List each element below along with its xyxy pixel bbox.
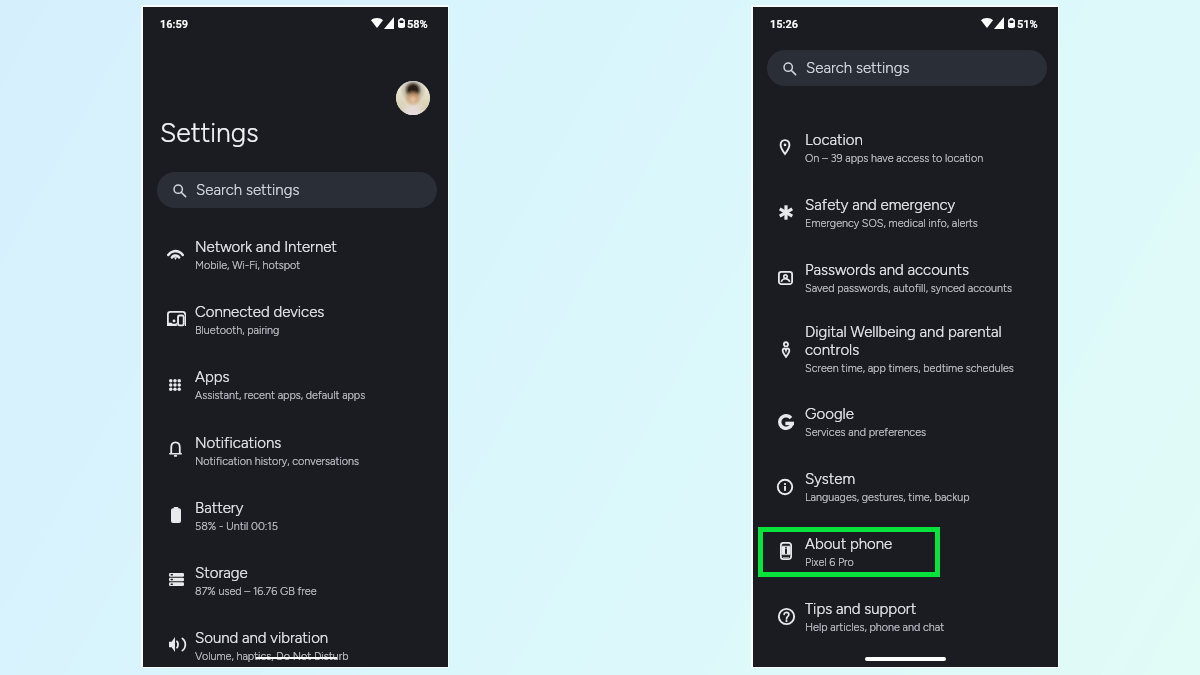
staticText: Tips and support (805, 600, 917, 618)
staticText: Location (805, 131, 863, 149)
staticText: Languages, gestures, time, backup (805, 491, 970, 504)
button[interactable]: About phone (753, 523, 1058, 588)
staticText: Pixel 6 Pro (805, 556, 854, 569)
staticText: Emergency SOS, medical info, alerts (805, 217, 978, 230)
staticText: On – 39 apps have access to location (805, 152, 984, 165)
button[interactable]: Apps (143, 356, 448, 421)
staticText: Safety and emergency (805, 196, 955, 214)
button[interactable]: System (753, 458, 1058, 523)
staticText: Volume, haptics, Do Not Disturb (195, 650, 349, 663)
button[interactable]: Google (753, 393, 1058, 458)
staticText: Apps (195, 368, 230, 386)
staticText: Search settings (196, 181, 300, 199)
staticText: Connected devices (195, 303, 325, 321)
button[interactable]: Network and Internet (143, 226, 448, 291)
staticText: Saved passwords, autofill, synced accoun… (805, 282, 1013, 295)
button[interactable]: Search settings (767, 50, 1047, 86)
button[interactable]: Storage (143, 552, 448, 617)
staticText: Digital Wellbeing and parental controls (805, 323, 1021, 359)
staticText: Network and Internet (195, 238, 337, 256)
staticText: System (805, 470, 856, 488)
button[interactable]: Search settings (157, 172, 437, 208)
button[interactable]: Safety and emergency (753, 184, 1058, 249)
staticText: 16:59 (160, 18, 188, 31)
staticText: 51% (1017, 18, 1038, 31)
staticText: Passwords and accounts (805, 261, 969, 279)
staticText: Assistant, recent apps, default apps (195, 389, 366, 402)
staticText: Battery (195, 499, 244, 517)
staticText: Mobile, Wi-Fi, hotspot (195, 259, 301, 272)
staticText: Notifications (195, 434, 282, 452)
staticText: Sound and vibration (195, 629, 329, 647)
staticText: Services and preferences (805, 426, 927, 439)
staticText: Google (805, 405, 854, 423)
button[interactable]: Connected devices (143, 291, 448, 356)
button[interactable]: Location (753, 119, 1058, 184)
staticText: Settings (160, 117, 259, 149)
button[interactable]: Digital Wellbeing and parental controls (753, 311, 1058, 393)
staticText: 58% (407, 18, 428, 31)
staticText: Search settings (806, 59, 910, 77)
staticText: Notification history, conversations (195, 455, 360, 468)
staticText: About phone (805, 535, 893, 553)
button[interactable]: Sound and vibration (143, 617, 448, 675)
button[interactable]: Account avatar (396, 81, 430, 115)
staticText: 15:26 (770, 18, 798, 31)
staticText: Bluetooth, pairing (195, 324, 280, 337)
staticText: 58% - Until 00:15 (195, 520, 278, 533)
button[interactable]: Battery (143, 487, 448, 552)
button[interactable]: Passwords and accounts (753, 249, 1058, 314)
button[interactable]: Notifications (143, 422, 448, 487)
button[interactable]: Tips and support (753, 588, 1058, 653)
staticText: Storage (195, 564, 248, 582)
staticText: Help articles, phone and chat (805, 621, 945, 634)
staticText: Screen time, app timers, bedtime schedul… (805, 362, 1014, 375)
staticText: 87% used – 16.76 GB free (195, 585, 317, 598)
